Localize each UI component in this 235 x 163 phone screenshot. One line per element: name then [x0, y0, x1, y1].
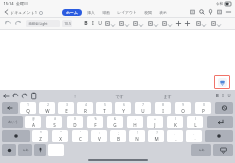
- button[interactable]: 。: [186, 130, 202, 142]
- staticText: 令和: [216, 2, 223, 6]
- button[interactable]: I: [220, 92, 226, 100]
- button[interactable]: 入力モード: [18, 144, 32, 156]
- button[interactable]: 書式のコピー: [195, 19, 202, 28]
- button[interactable]: ;: [110, 130, 126, 142]
- button[interactable]: B: [214, 92, 220, 100]
- button[interactable]: 塗りつぶし: [118, 19, 125, 28]
- button[interactable]: 6: [115, 102, 131, 114]
- button[interactable]: 段落番号種類: [168, 19, 172, 29]
- button[interactable]: (: [167, 116, 183, 128]
- button[interactable]: 文字色: [132, 19, 139, 28]
- staticText: -: [135, 117, 136, 121]
- button[interactable]: ノート: [189, 8, 196, 16]
- button[interactable]: 蛍光ペン色: [111, 19, 115, 29]
- button[interactable]: +: [147, 116, 163, 128]
- button[interactable]: @: [25, 116, 41, 128]
- button[interactable]: ます: [160, 94, 175, 99]
- button[interactable]: 蛍光ペン: [104, 19, 111, 28]
- button[interactable]: #: [46, 116, 62, 128]
- button[interactable]: インデント減: [175, 19, 182, 28]
- button[interactable]: !: [71, 94, 79, 99]
- button[interactable]: ): [187, 116, 203, 128]
- button[interactable]: タブ: [2, 102, 18, 114]
- button[interactable]: 5: [96, 102, 112, 114]
- button[interactable]: 、: [167, 130, 183, 142]
- button[interactable]: キーボードを閉じる: [214, 75, 230, 89]
- button[interactable]: 箇条書き種類: [154, 19, 158, 29]
- button[interactable]: スペース: [48, 144, 64, 156]
- button[interactable]: スタイル一覧: [217, 19, 221, 29]
- button[interactable]: 記号: [2, 144, 16, 156]
- button[interactable]: レイアウト: [115, 10, 139, 15]
- staticText: R: [84, 108, 87, 114]
- button[interactable]: 元に戻す: [4, 19, 12, 28]
- button[interactable]: I: [89, 19, 96, 28]
- button[interactable]: ?: [148, 130, 164, 142]
- button[interactable]: キーボードを閉じる: [213, 144, 233, 156]
- button[interactable]: %: [87, 116, 103, 128]
- button[interactable]: $: [67, 116, 83, 128]
- button[interactable]: やり直す: [21, 92, 28, 100]
- button[interactable]: 10.5: [62, 20, 72, 27]
- button[interactable]: U: [226, 92, 232, 100]
- button[interactable]: 検索: [198, 8, 205, 16]
- staticText: U: [141, 108, 145, 114]
- staticText: !: [137, 131, 138, 135]
- button[interactable]: 共有: [216, 8, 223, 16]
- button[interactable]: です: [112, 94, 127, 99]
- button[interactable]: *: [32, 130, 48, 142]
- button[interactable]: 9: [175, 102, 191, 114]
- button[interactable]: ホーム: [62, 9, 82, 16]
- button[interactable]: 音声入力: [34, 144, 46, 156]
- button[interactable]: 0: [195, 102, 211, 114]
- button[interactable]: 切り取り: [3, 92, 10, 100]
- button[interactable]: 改行: [207, 116, 233, 128]
- button[interactable]: 3: [58, 102, 74, 114]
- button[interactable]: かな入力切替: [2, 116, 23, 128]
- staticText: 校閲: [144, 10, 152, 15]
- button[interactable]: 描画: [100, 10, 112, 15]
- button[interactable]: &: [107, 116, 123, 128]
- button[interactable]: 4: [77, 102, 93, 114]
- button[interactable]: 音声: [207, 8, 214, 16]
- button[interactable]: 7: [135, 102, 151, 114]
- button[interactable]: 書式オプション: [202, 19, 206, 29]
- staticText: F: [94, 122, 97, 128]
- button[interactable]: シフト: [2, 130, 30, 142]
- button[interactable]: やり直し: [14, 19, 22, 28]
- button[interactable]: 2: [39, 102, 55, 114]
- button[interactable]: ': [72, 130, 88, 142]
- button[interactable]: ドキュメント1: [10, 10, 43, 15]
- button[interactable]: :: [91, 130, 107, 142]
- staticText: I: [162, 108, 164, 114]
- button[interactable]: 塗りつぶし色: [125, 19, 129, 29]
- button[interactable]: 8: [155, 102, 171, 114]
- button[interactable]: 削除: [215, 102, 233, 114]
- button[interactable]: 箇条書き: [147, 19, 154, 28]
- button[interactable]: U: [96, 19, 103, 28]
- button[interactable]: 校閲: [142, 10, 154, 15]
- button[interactable]: シフト右: [205, 130, 233, 142]
- button[interactable]: 段落番号: [161, 19, 168, 28]
- button[interactable]: 游明朝 Light: [26, 20, 60, 27]
- button[interactable]: 表示: [157, 10, 169, 15]
- button[interactable]: インデント増: [184, 19, 191, 28]
- button[interactable]: 貼り付け: [30, 92, 37, 100]
- button[interactable]: 1: [20, 102, 36, 114]
- button[interactable]: ": [52, 130, 68, 142]
- button[interactable]: 元に戻す: [12, 92, 19, 100]
- staticText: U: [227, 93, 231, 99]
- button[interactable]: B: [82, 19, 89, 28]
- staticText: です: [115, 94, 124, 99]
- button[interactable]: 変換: [191, 144, 211, 156]
- button[interactable]: 文字色選択: [139, 19, 143, 29]
- button[interactable]: 戻る: [3, 8, 9, 16]
- button[interactable]: その他: [225, 8, 232, 16]
- button[interactable]: -: [127, 116, 143, 128]
- staticText: 描画: [102, 10, 110, 15]
- button[interactable]: 挿入: [85, 10, 97, 15]
- button[interactable]: スタイル: [210, 19, 217, 28]
- button[interactable]: !: [129, 130, 145, 142]
